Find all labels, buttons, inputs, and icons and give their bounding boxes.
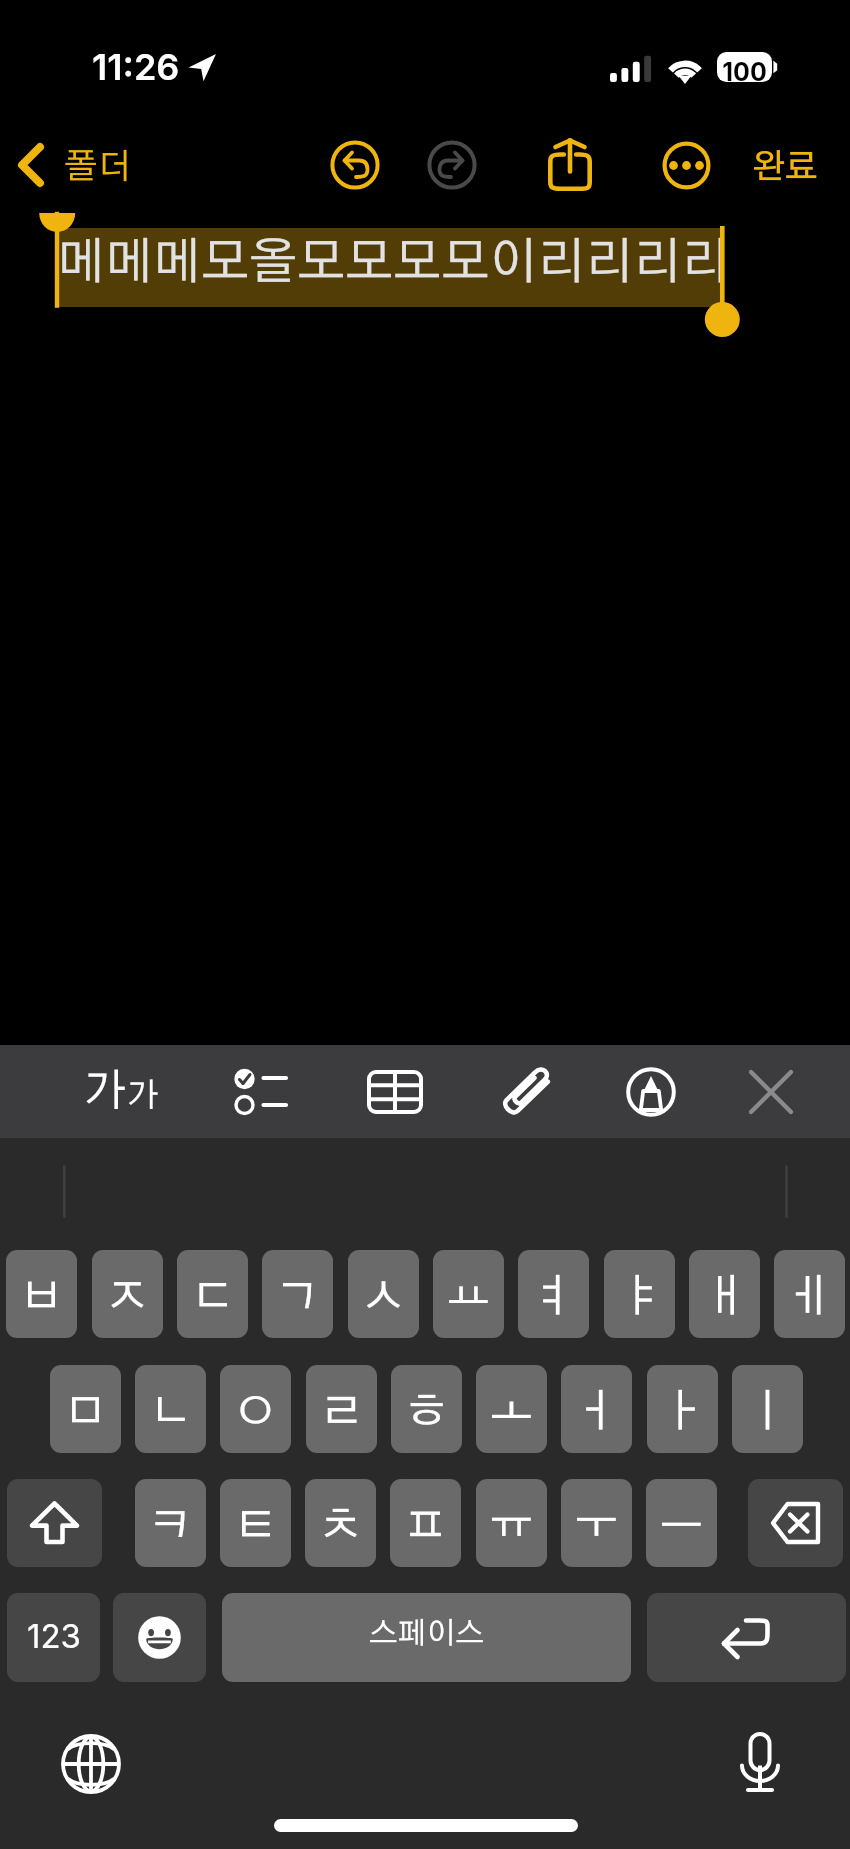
button[interactable]: Redo xyxy=(427,140,477,190)
button[interactable]: 123 xyxy=(7,1593,100,1682)
staticText: ㅂ xyxy=(19,1275,64,1320)
staticText: 메메메모올모모모모이리리리리 xyxy=(57,238,730,288)
staticText: 100 xyxy=(717,57,772,87)
staticText: ㅋ xyxy=(148,1504,193,1549)
staticText: ㅑ xyxy=(617,1275,662,1320)
staticText: 11:26 xyxy=(92,45,180,89)
staticText: ㅣ xyxy=(745,1390,790,1435)
button[interactable]: ㄹ xyxy=(306,1365,377,1453)
button[interactable]: ㄷ xyxy=(177,1250,248,1338)
button[interactable]: Emoji xyxy=(113,1593,206,1682)
button[interactable]: 스페이스 xyxy=(222,1593,631,1682)
staticText: ㅍ xyxy=(403,1504,448,1549)
button[interactable]: ㅔ xyxy=(774,1250,845,1338)
button[interactable]: ㅂ xyxy=(6,1250,77,1338)
button[interactable]: ㅊ xyxy=(305,1479,376,1567)
button[interactable]: ㅛ xyxy=(433,1250,504,1338)
button[interactable]: ㅇ xyxy=(220,1365,291,1453)
staticText: ㅐ xyxy=(702,1275,747,1320)
button[interactable]: Undo xyxy=(330,140,380,190)
staticText: ㅜ xyxy=(574,1504,619,1549)
staticText: ㅌ xyxy=(233,1504,278,1549)
staticText: ㅇ xyxy=(233,1390,278,1435)
button[interactable]: ㅣ xyxy=(732,1365,803,1453)
staticText: 가 xyxy=(127,1080,159,1113)
staticText: ㅅ xyxy=(361,1275,406,1320)
button[interactable]: Attach xyxy=(474,1052,577,1131)
staticText: ㄴ xyxy=(148,1390,193,1435)
staticText: ㅓ xyxy=(574,1390,619,1435)
button[interactable]: Checklist xyxy=(208,1052,311,1131)
button[interactable]: Return xyxy=(647,1593,846,1682)
button[interactable]: ㄴ xyxy=(135,1365,206,1453)
button[interactable]: Dictation xyxy=(724,1728,796,1800)
staticText: ㄱ xyxy=(275,1275,320,1320)
button[interactable]: Share xyxy=(548,137,592,191)
button[interactable]: ㅠ xyxy=(476,1479,547,1567)
button[interactable]: ㅋ xyxy=(135,1479,206,1567)
button[interactable]: Backspace xyxy=(748,1479,843,1567)
button[interactable]: ㅡ xyxy=(646,1479,717,1567)
button[interactable]: ㅍ xyxy=(390,1479,461,1567)
button[interactable]: ㅓ xyxy=(561,1365,632,1453)
staticText: ㅛ xyxy=(446,1275,491,1320)
button[interactable]: ㅐ xyxy=(689,1250,760,1338)
staticText: 123 xyxy=(27,1616,81,1656)
button[interactable]: 완료 xyxy=(742,126,829,204)
button[interactable]: ㅕ xyxy=(518,1250,589,1338)
button[interactable]: 폴더 xyxy=(6,126,146,204)
button[interactable]: ㅗ xyxy=(476,1365,547,1453)
staticText: ㅡ xyxy=(659,1504,704,1549)
staticText: ㄹ xyxy=(319,1390,364,1435)
staticText: 가 xyxy=(84,1070,127,1114)
button[interactable]: ㅈ xyxy=(92,1250,163,1338)
staticText: ㅊ xyxy=(318,1504,363,1549)
button[interactable]: Table xyxy=(343,1052,446,1131)
button[interactable]: Change keyboard xyxy=(55,1728,127,1800)
button[interactable]: ㄱ xyxy=(262,1250,333,1338)
button[interactable]: ㅁ xyxy=(50,1365,121,1453)
button[interactable]: ㅏ xyxy=(647,1365,718,1453)
staticText: ㅏ xyxy=(660,1390,705,1435)
staticText: ㅕ xyxy=(531,1275,576,1320)
staticText: ㅈ xyxy=(105,1275,150,1320)
staticText: 폴더 xyxy=(64,150,132,185)
staticText: ㅗ xyxy=(489,1390,534,1435)
button[interactable]: Close xyxy=(719,1052,822,1131)
button[interactable]: 가 xyxy=(70,1052,173,1131)
staticText: ㅎ xyxy=(404,1390,449,1435)
staticText: 스페이스 xyxy=(369,1619,485,1649)
button[interactable]: ㅌ xyxy=(220,1479,291,1567)
button[interactable]: ㅎ xyxy=(391,1365,462,1453)
staticText: ㅁ xyxy=(63,1390,108,1435)
staticText: ㅔ xyxy=(787,1275,832,1320)
staticText: ㅠ xyxy=(489,1504,534,1549)
staticText: 완료 xyxy=(752,151,819,185)
button[interactable]: Shift xyxy=(7,1479,102,1567)
button[interactable]: ㅅ xyxy=(348,1250,419,1338)
staticText: ㄷ xyxy=(190,1275,235,1320)
button[interactable]: Markup xyxy=(599,1052,702,1131)
button[interactable]: ㅜ xyxy=(561,1479,632,1567)
button[interactable]: ㅑ xyxy=(604,1250,675,1338)
button[interactable]: More options xyxy=(662,141,711,190)
